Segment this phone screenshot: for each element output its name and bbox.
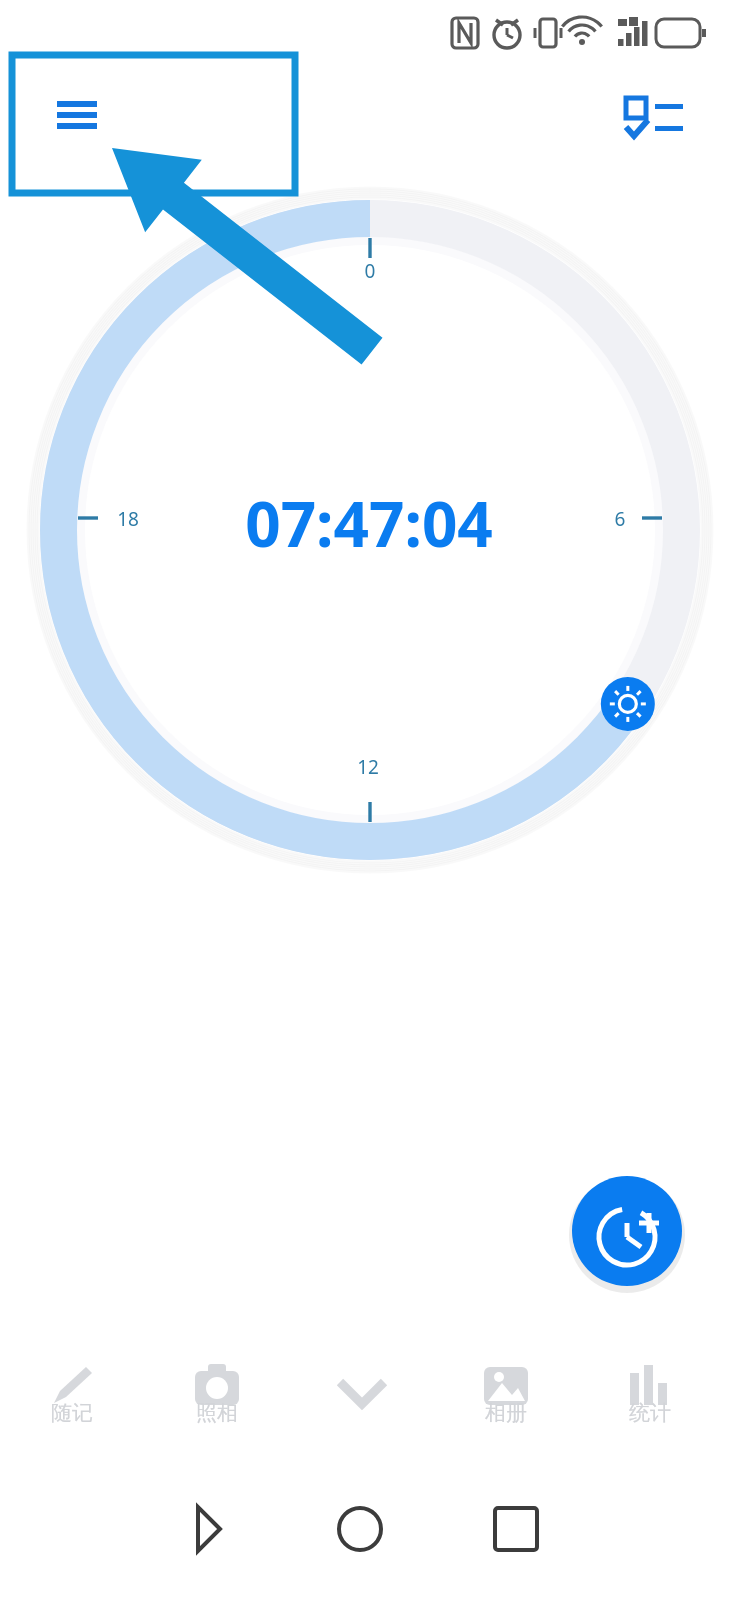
staticText: 相册 [464,1400,548,1426]
button[interactable] [590,1340,738,1470]
button[interactable]: Collapse [294,1340,442,1470]
staticText: 07:47:04 [0,481,738,565]
staticText: 18 [106,506,150,532]
button[interactable]: Brightness [60,630,118,688]
staticText: 6 [598,506,642,532]
staticText: 0 [348,258,392,284]
button[interactable] [0,1340,147,1470]
button[interactable]: Checklist [598,80,674,148]
button[interactable] [442,1340,590,1470]
button[interactable]: Back [147,1488,294,1600]
button[interactable]: Home [294,1488,442,1600]
button[interactable]: Recents [442,1488,590,1600]
staticText: 随记 [30,1400,114,1426]
staticText: 照相 [175,1400,259,1426]
staticText: 统计 [608,1400,692,1426]
button[interactable]: Add timer [572,1176,682,1286]
button[interactable] [147,1340,294,1470]
staticText: 12 [346,754,390,780]
button[interactable]: Menu [40,84,116,144]
